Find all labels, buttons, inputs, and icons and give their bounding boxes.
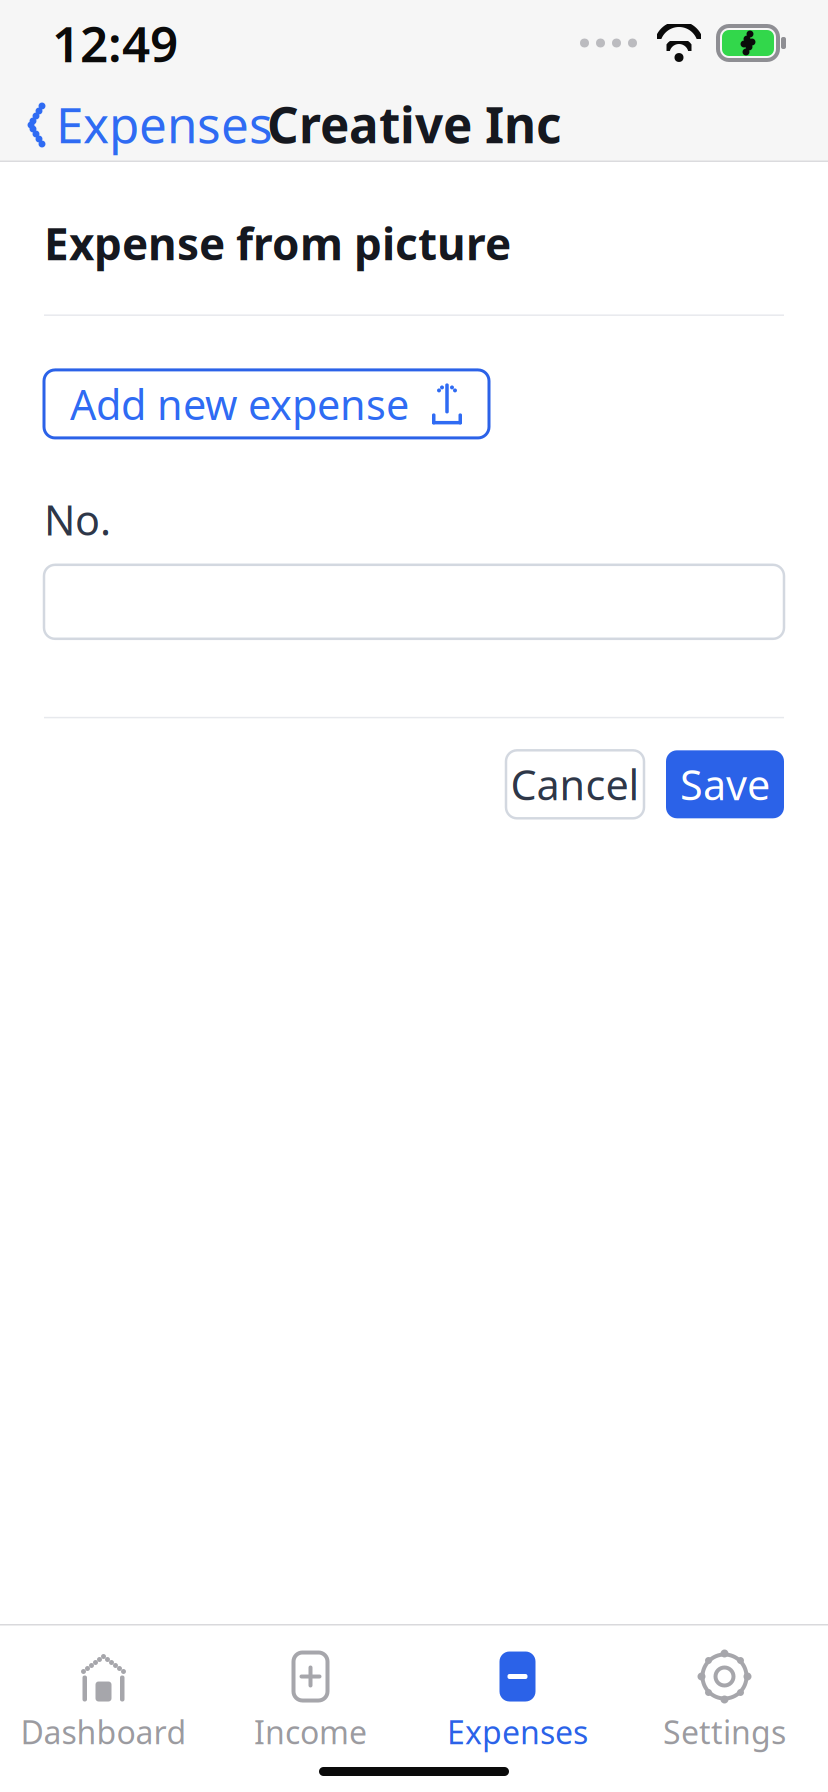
staticText: Expenses (447, 1710, 588, 1753)
button[interactable]: Save (666, 750, 784, 818)
staticText: Expense from picture (44, 214, 511, 272)
staticText: Creative Inc (267, 91, 561, 157)
staticText: Save (680, 757, 770, 812)
button[interactable]: Expenses (414, 1647, 621, 1757)
button[interactable]: Add new expense (44, 370, 489, 438)
button[interactable]: Dashboard (0, 1647, 207, 1757)
button[interactable]: Expenses (0, 79, 289, 169)
staticText: Add new expense (70, 376, 409, 431)
button[interactable]: Cancel (506, 750, 644, 818)
staticText: Dashboard (20, 1710, 186, 1753)
staticText: Cancel (510, 757, 639, 812)
staticText: Income (254, 1710, 367, 1753)
staticText: Settings (663, 1710, 786, 1753)
staticText: Expenses (56, 91, 273, 157)
button[interactable]: Settings (621, 1647, 828, 1757)
staticText: 12:49 (52, 10, 178, 76)
button[interactable]: Income (207, 1647, 414, 1757)
staticText: No. (44, 492, 111, 547)
